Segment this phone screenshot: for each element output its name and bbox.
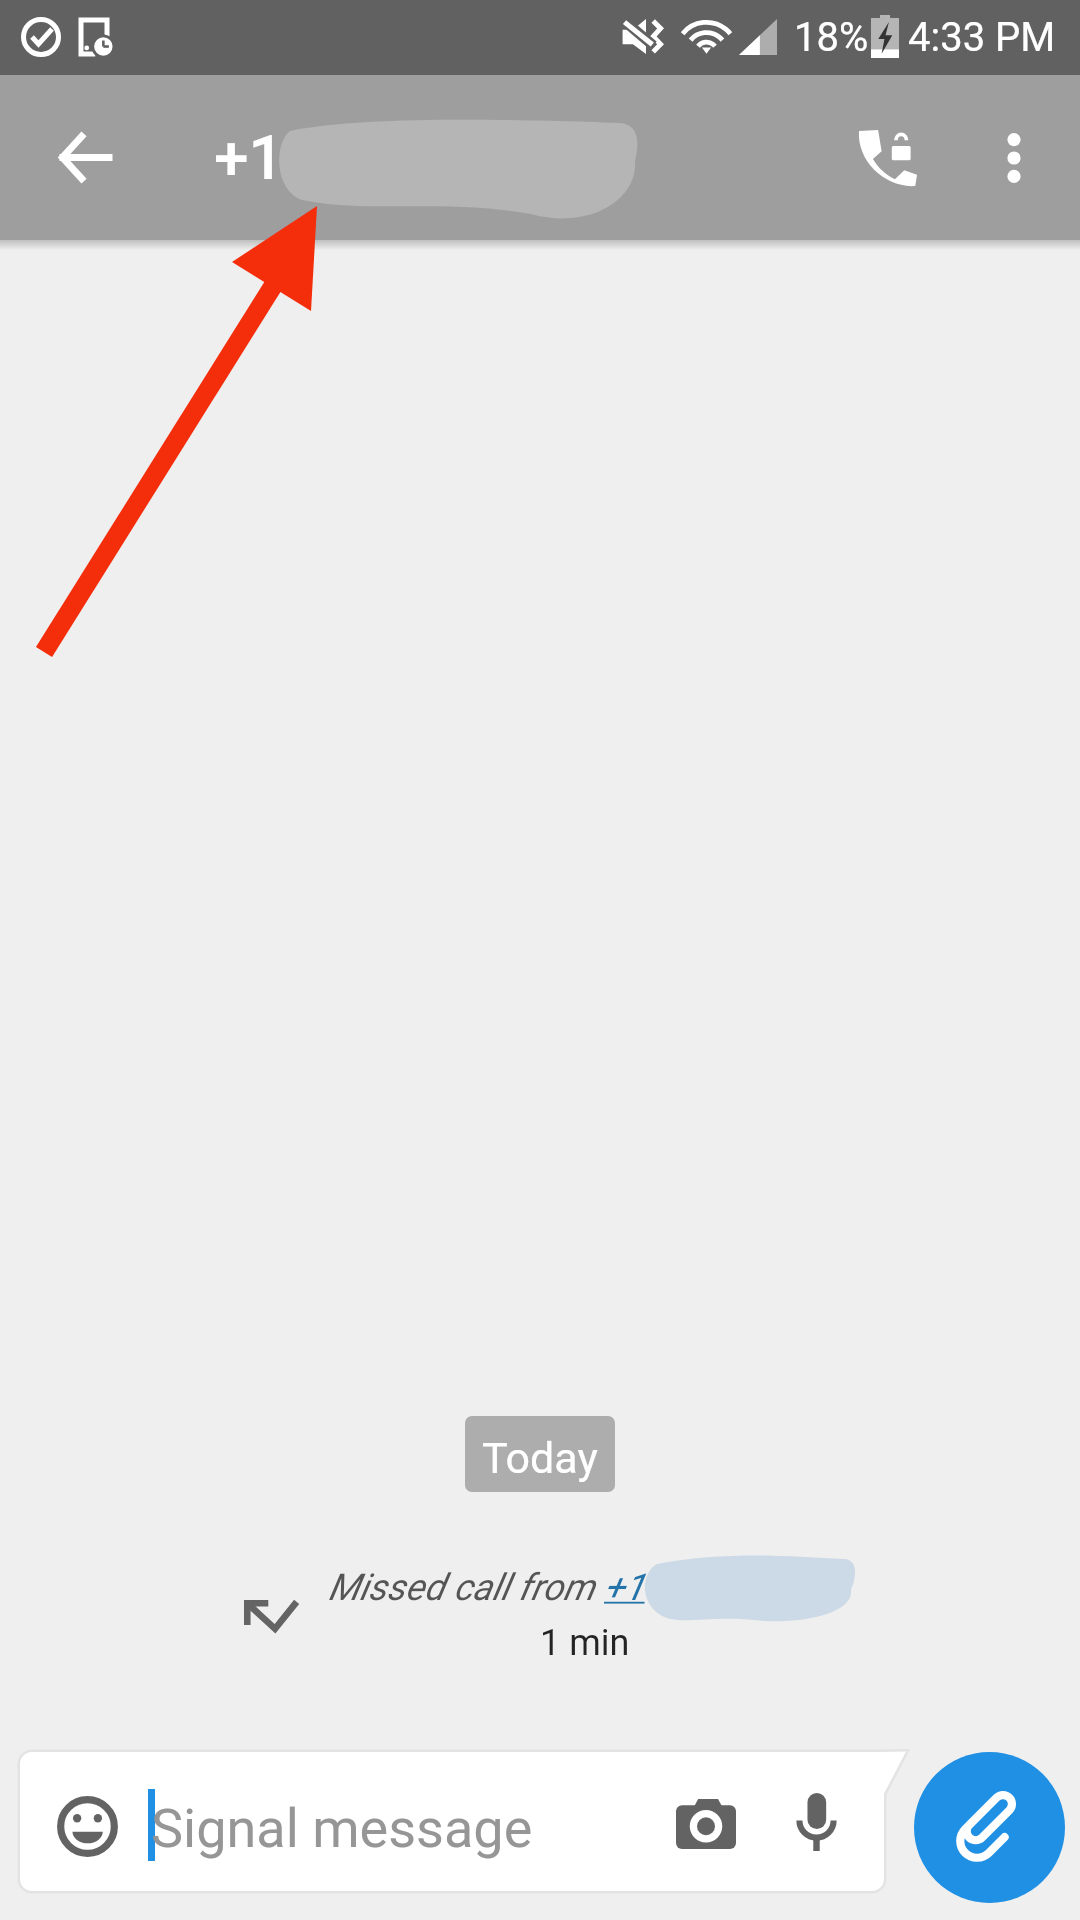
- button[interactable]: Today: [465, 1416, 615, 1492]
- staticText: 18%: [794, 14, 869, 61]
- staticText: 4:33 PM: [908, 14, 1056, 61]
- button[interactable]: More options: [954, 75, 1074, 240]
- staticText: Signal message: [151, 1797, 533, 1860]
- staticText: 1 min: [540, 1622, 630, 1664]
- staticText: +1: [604, 1566, 645, 1609]
- button[interactable]: Attach: [914, 1752, 1065, 1903]
- staticText: Today: [482, 1433, 598, 1483]
- staticText: Missed call from: [328, 1566, 604, 1609]
- button[interactable]: Camera: [656, 1764, 756, 1884]
- button[interactable]: Emoji: [37, 1766, 137, 1886]
- button[interactable]: Record voice message: [766, 1764, 866, 1879]
- staticText: +1: [214, 121, 284, 194]
- button[interactable]: Back: [24, 75, 144, 240]
- button[interactable]: Secure call: [828, 75, 948, 240]
